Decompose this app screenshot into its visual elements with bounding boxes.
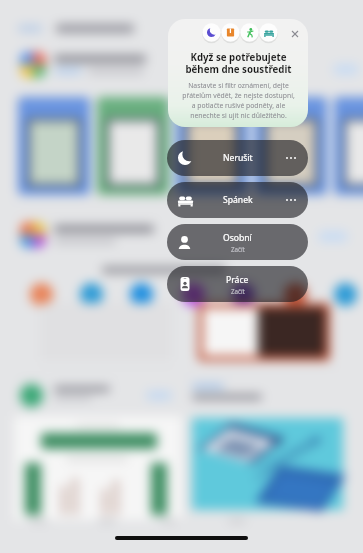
staticText: Začít bbox=[231, 287, 245, 295]
staticText: Začít bbox=[231, 245, 245, 253]
button[interactable]: Nerušit bbox=[167, 140, 308, 176]
staticText: Práce bbox=[226, 274, 249, 286]
button[interactable]: Spánek bbox=[167, 182, 308, 218]
button[interactable]: Práce bbox=[167, 266, 308, 302]
button[interactable]: More options bbox=[286, 157, 296, 159]
button[interactable]: Close bbox=[288, 27, 302, 41]
staticText: Spánek bbox=[223, 194, 253, 206]
staticText: Nastavte si filtr oznámení, dejte přátel… bbox=[182, 81, 295, 120]
staticText: Nerušit bbox=[223, 152, 253, 164]
staticText: Osobní bbox=[223, 232, 252, 244]
staticText: Když se potřebujete během dne soustředit bbox=[185, 51, 292, 76]
button[interactable]: Osobní bbox=[167, 224, 308, 260]
button[interactable]: More options bbox=[286, 199, 296, 201]
